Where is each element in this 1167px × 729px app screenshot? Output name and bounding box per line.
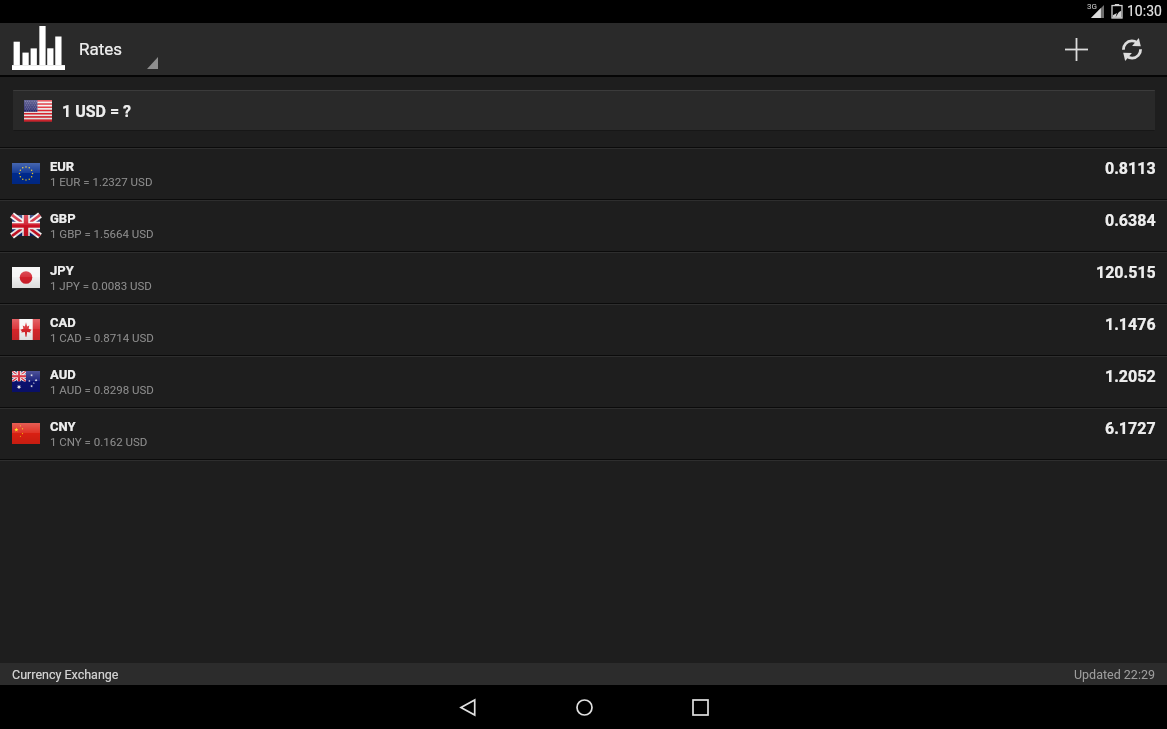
staticText: JPY <box>50 263 74 278</box>
staticText: 1.1476 <box>1105 315 1156 334</box>
staticText: GBP <box>50 211 76 226</box>
staticText: 1.2052 <box>1105 367 1156 386</box>
staticText: EUR <box>50 159 75 174</box>
staticText: 1 CNY = 0.162 USD <box>50 435 148 448</box>
button[interactable]: Home <box>526 685 642 729</box>
staticText: 0.6384 <box>1105 211 1156 230</box>
staticText: CNY <box>50 419 76 434</box>
button[interactable]: CNY <box>0 409 1167 459</box>
button[interactable]: JPY <box>0 253 1167 303</box>
staticText: 6.1727 <box>1105 419 1156 438</box>
button[interactable]: Rates <box>0 23 166 75</box>
button[interactable]: 1 USD = ? <box>13 90 1155 131</box>
button[interactable]: Refresh rates <box>1104 23 1160 75</box>
staticText: 120.515 <box>1096 263 1156 282</box>
button[interactable]: AUD <box>0 357 1167 407</box>
staticText: 1 JPY = 0.0083 USD <box>50 279 152 292</box>
staticText: 0.8113 <box>1105 159 1156 178</box>
staticText: AUD <box>50 367 76 382</box>
staticText: 3G <box>1087 2 1097 11</box>
staticText: Currency Exchange <box>12 667 119 682</box>
staticText: CAD <box>50 315 76 330</box>
staticText: 1 EUR = 1.2327 USD <box>50 175 153 188</box>
button[interactable]: Recent apps <box>642 685 758 729</box>
staticText: Updated 22:29 <box>1074 667 1155 682</box>
staticText: 1 AUD = 0.8298 USD <box>50 383 154 396</box>
button[interactable]: Back <box>410 685 526 729</box>
staticText: 1 CAD = 0.8714 USD <box>50 331 154 344</box>
staticText: 1 GBP = 1.5664 USD <box>50 227 154 240</box>
button[interactable]: EUR <box>0 149 1167 199</box>
staticText: 10:30 <box>1127 3 1162 19</box>
button[interactable]: Add currency <box>1048 23 1104 75</box>
button[interactable]: GBP <box>0 201 1167 251</box>
staticText: Rates <box>79 39 123 59</box>
staticText: 1 USD = ? <box>62 102 132 121</box>
button[interactable]: CAD <box>0 305 1167 355</box>
